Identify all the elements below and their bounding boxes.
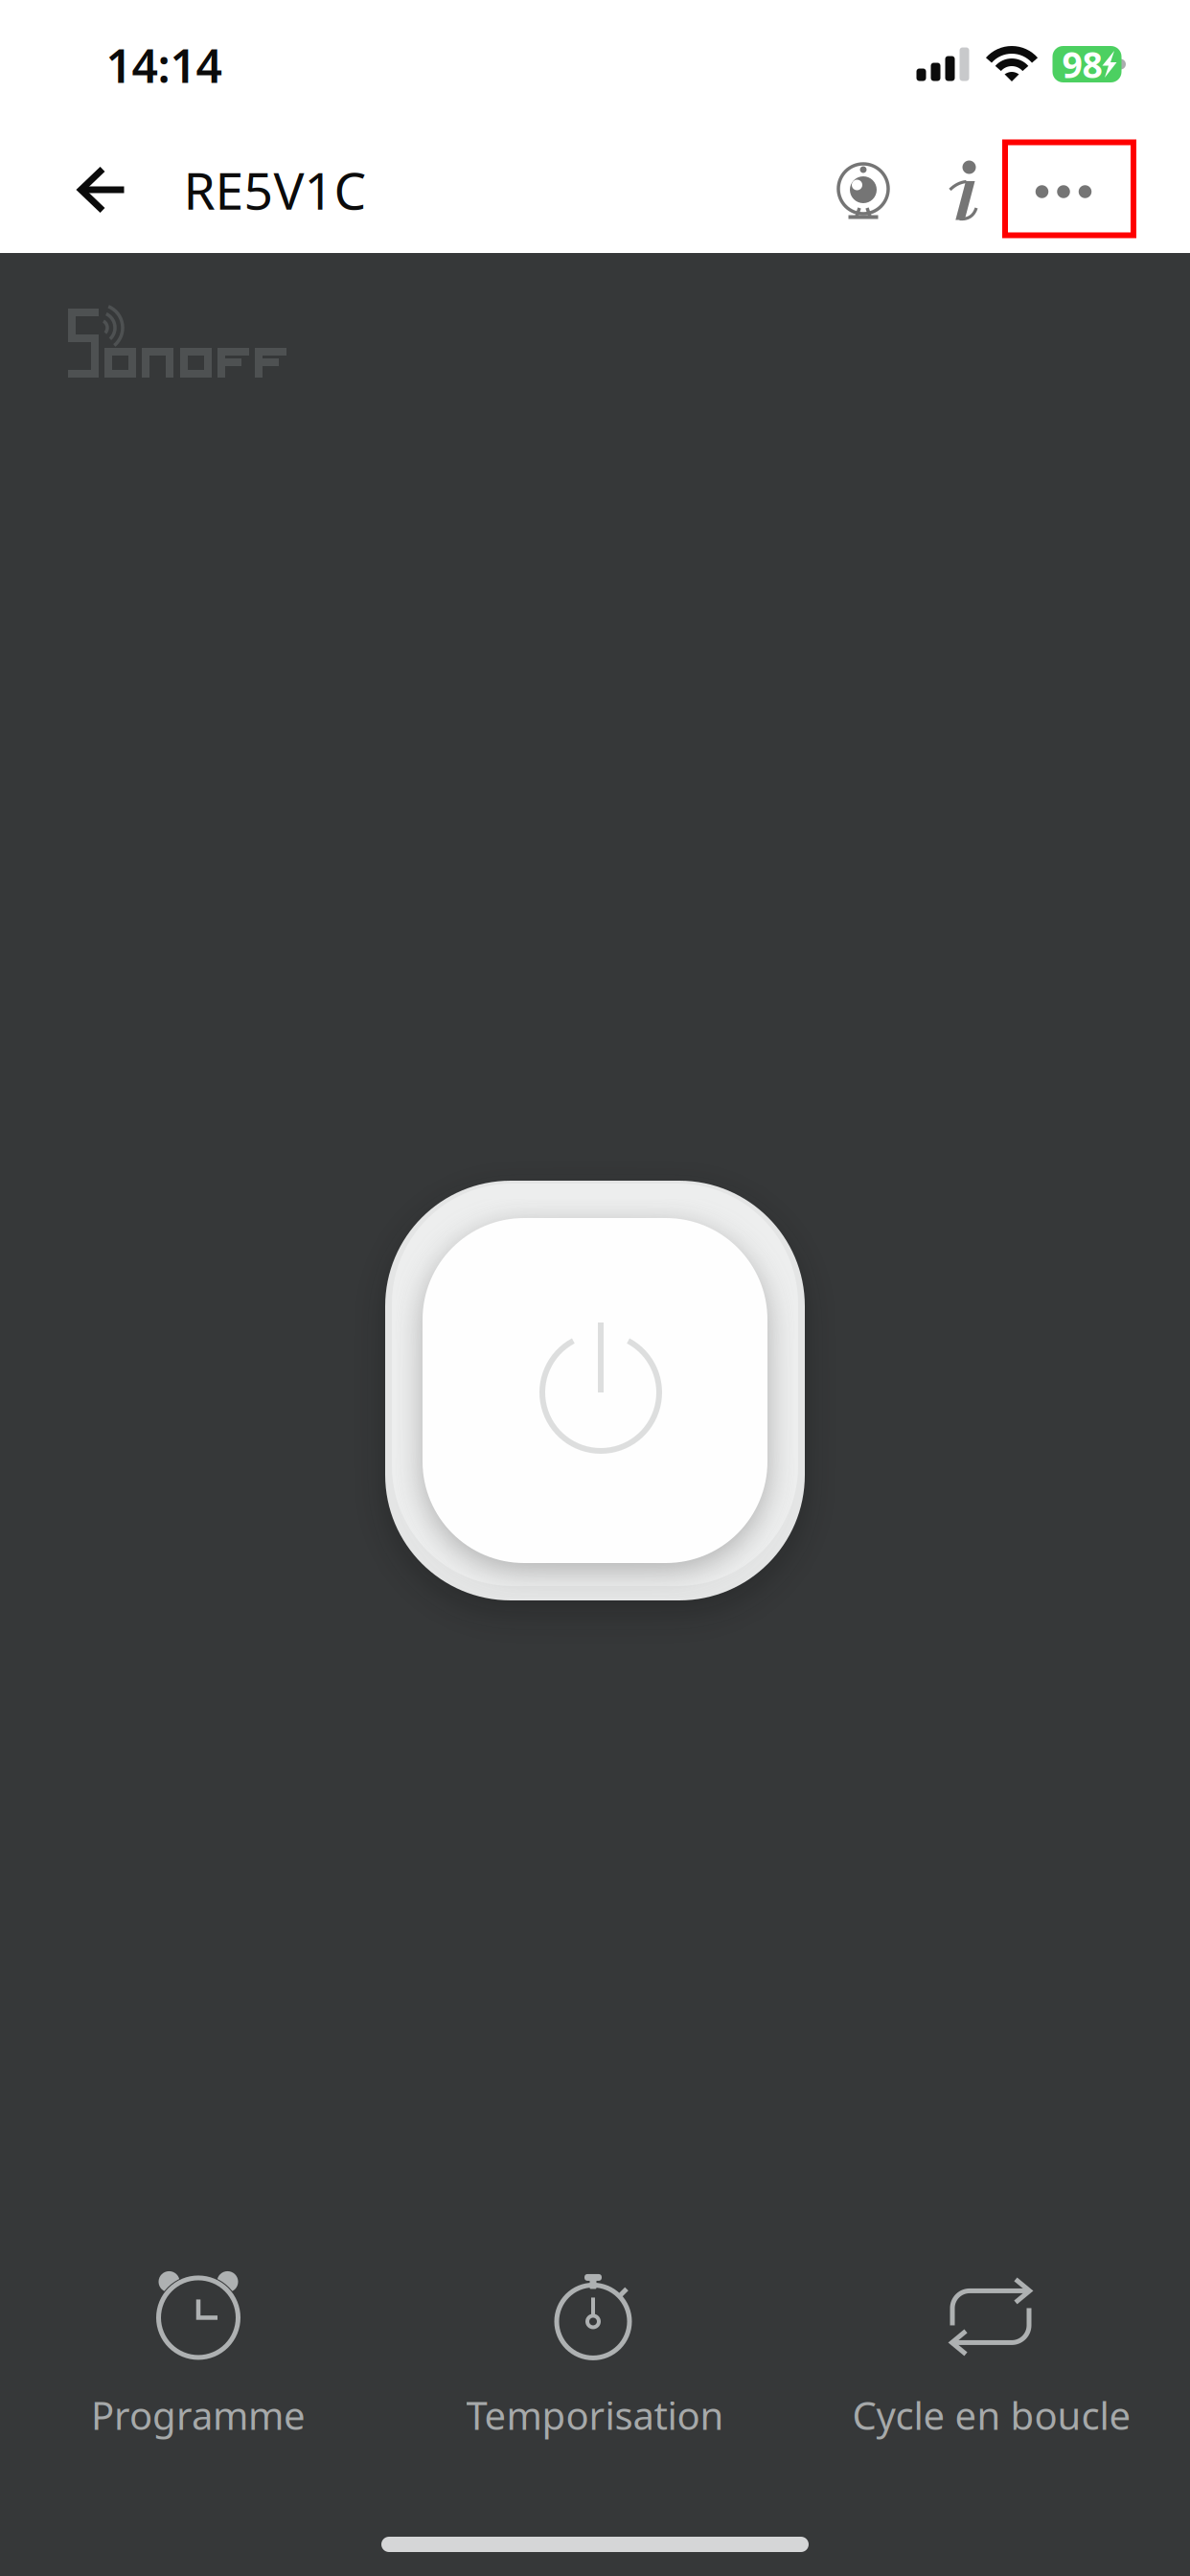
staticText: Programme	[91, 2390, 306, 2440]
button[interactable]: Cycle en boucle	[793, 2267, 1190, 2446]
staticText: Cycle en boucle	[852, 2390, 1131, 2440]
button[interactable]: Device info	[815, 144, 911, 240]
button[interactable]: More options	[1005, 142, 1133, 235]
staticText: 98	[1062, 40, 1102, 88]
button[interactable]: Programme	[0, 2267, 397, 2446]
button[interactable]: Information	[921, 143, 1003, 239]
button[interactable]: Temporisation	[397, 2267, 793, 2446]
staticText: Temporisation	[466, 2390, 724, 2440]
button[interactable]: Back	[50, 137, 155, 242]
staticText: 14:14	[106, 35, 222, 96]
button[interactable]: Power	[360, 1156, 830, 1625]
staticText: RE5V1C	[183, 156, 366, 224]
